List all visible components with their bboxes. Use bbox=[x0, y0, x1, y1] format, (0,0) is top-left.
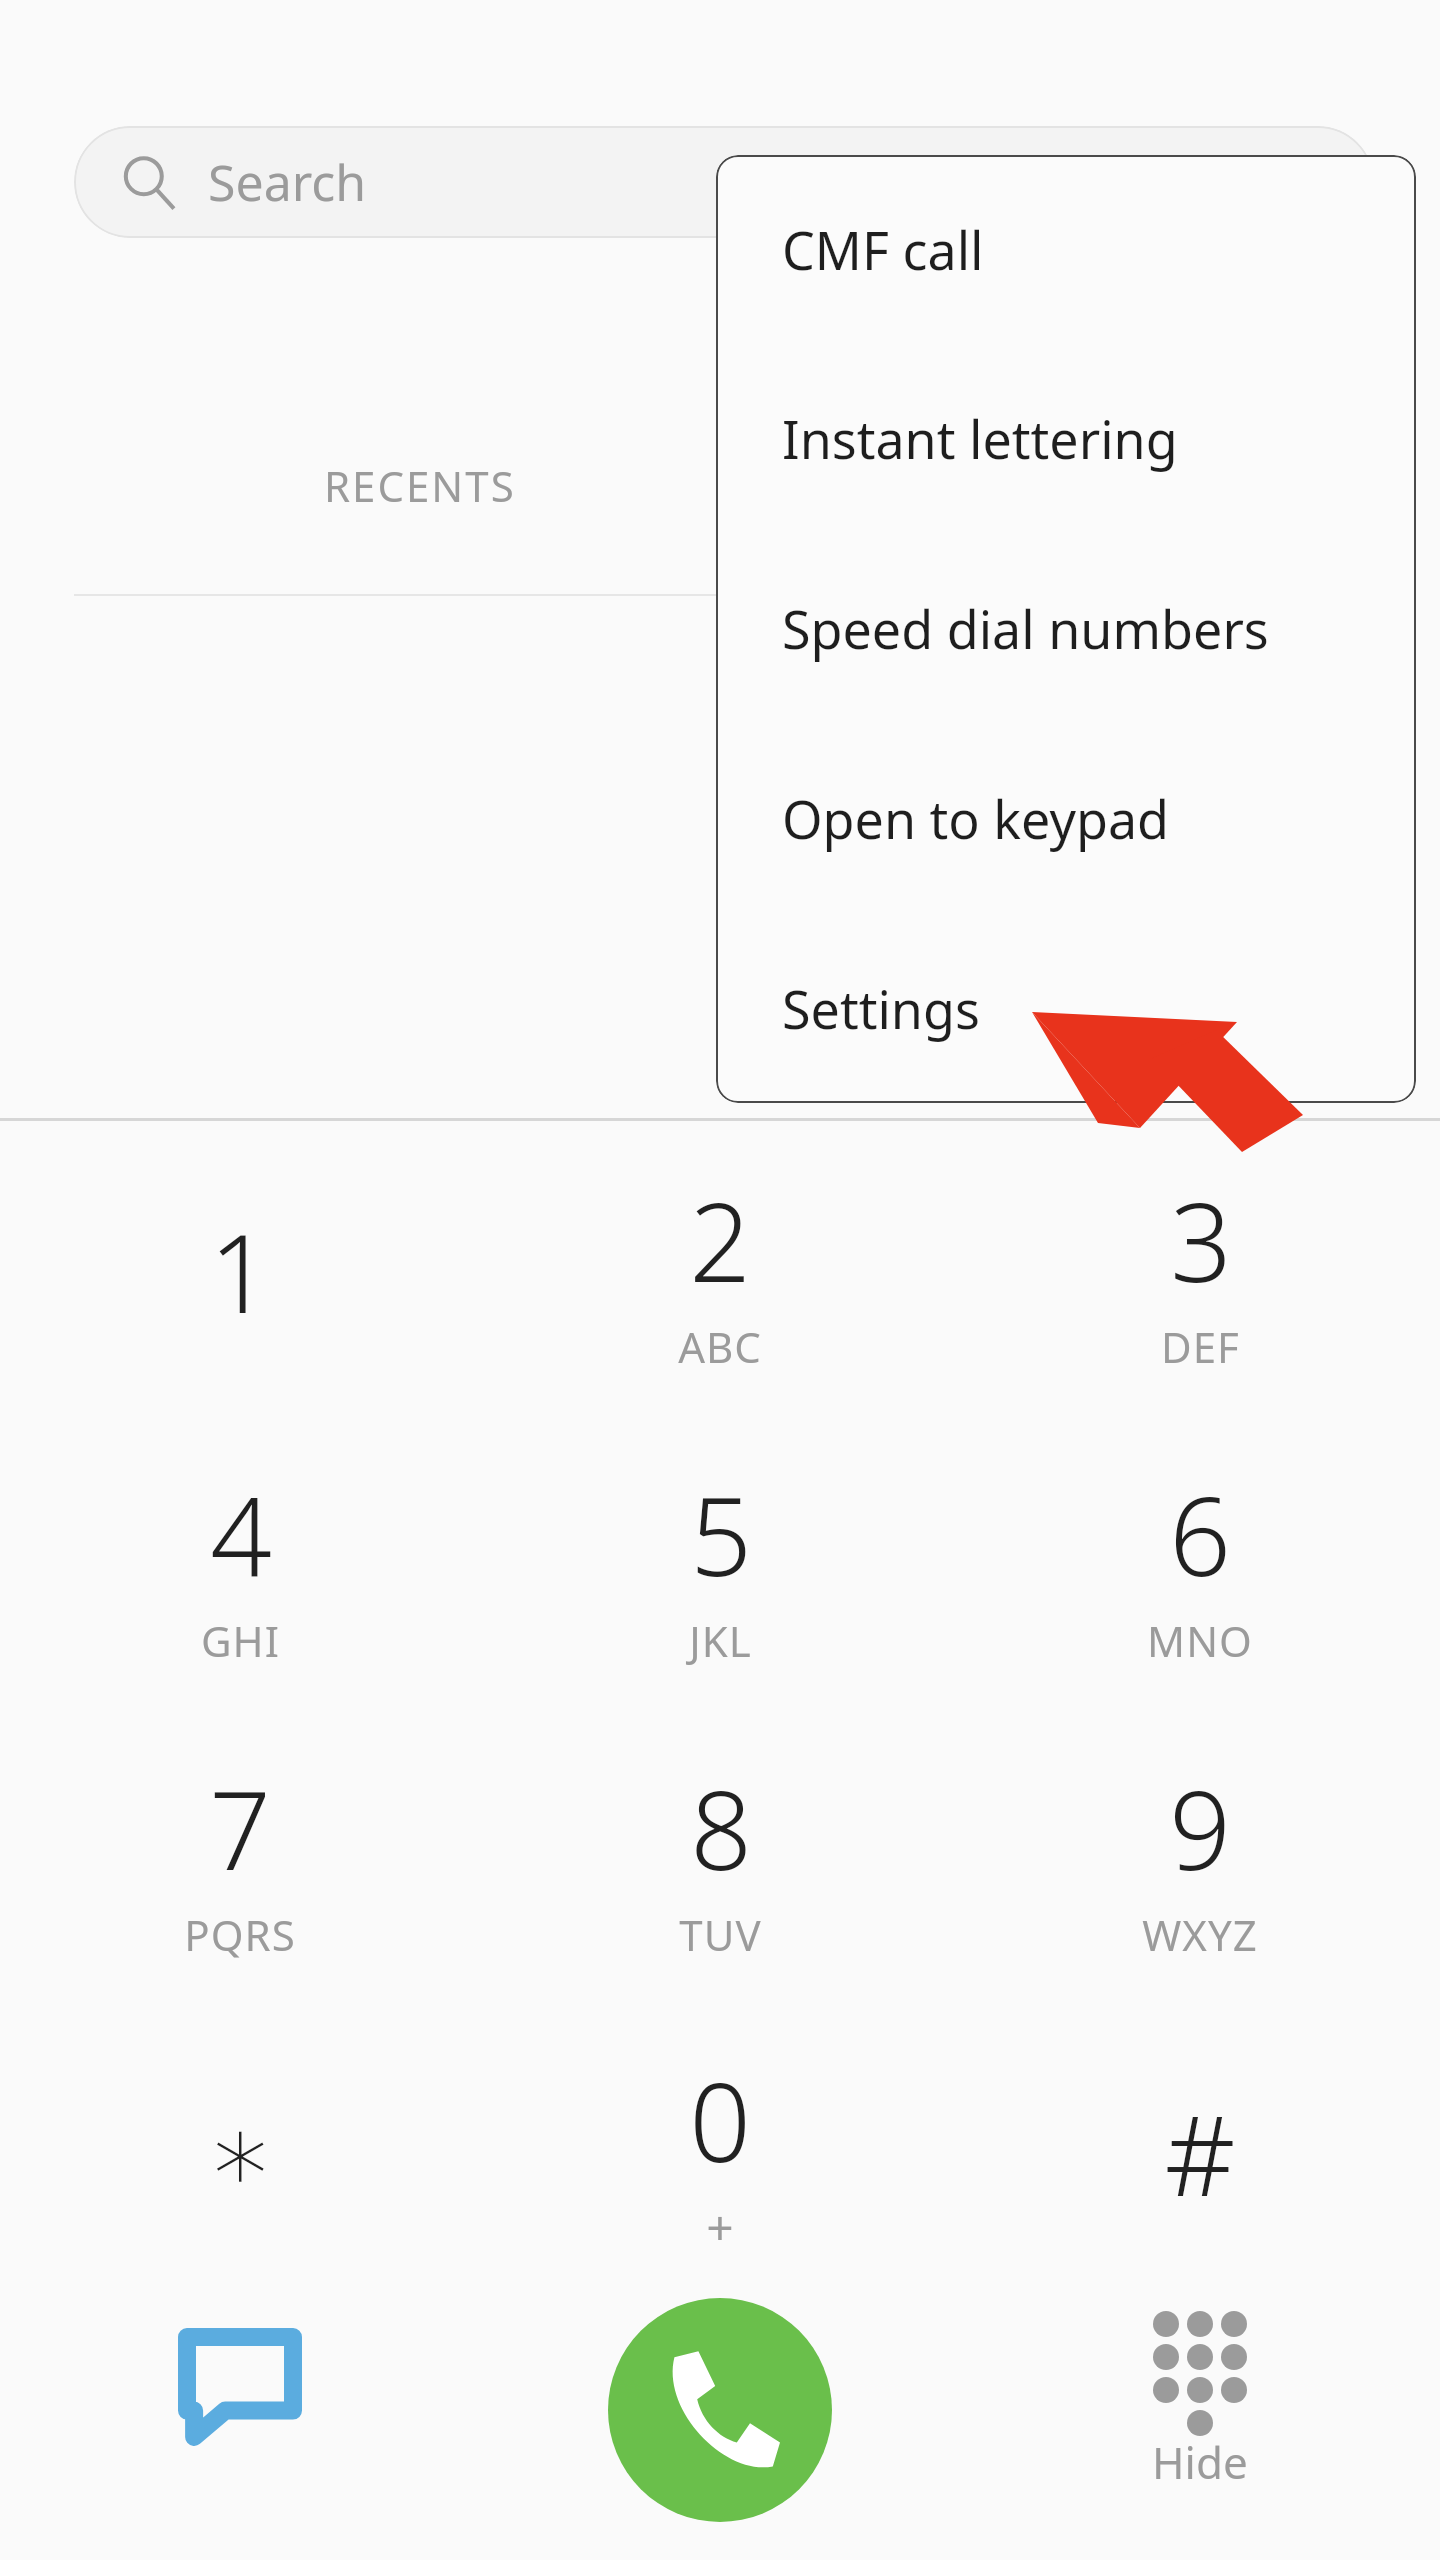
button[interactable]: 6 bbox=[960, 1418, 1440, 1712]
staticText: + bbox=[706, 2194, 735, 2259]
staticText: Hide bbox=[1152, 2432, 1248, 2492]
button[interactable]: Call bbox=[480, 2298, 960, 2560]
staticText: 6 bbox=[1169, 1461, 1231, 1608]
staticText: DEF bbox=[1161, 1318, 1240, 1375]
staticText: Search bbox=[208, 148, 367, 216]
button[interactable]: Instant lettering bbox=[716, 344, 1416, 533]
staticText: Open to keypad bbox=[782, 783, 1170, 854]
button[interactable]: Search bbox=[74, 126, 1374, 238]
staticText: 1 bbox=[209, 1198, 271, 1345]
staticText: Instant lettering bbox=[782, 403, 1178, 474]
staticText: GHI bbox=[201, 1612, 280, 1669]
button[interactable]: RECENTS bbox=[50, 410, 790, 560]
button[interactable]: CMF call bbox=[716, 155, 1416, 344]
staticText: PQRS bbox=[184, 1906, 296, 1963]
button[interactable]: Hide bbox=[960, 2298, 1440, 2560]
button[interactable]: Open to keypad bbox=[716, 723, 1416, 913]
button[interactable]: 4 bbox=[0, 1418, 480, 1712]
button[interactable]: Settings bbox=[716, 913, 1416, 1103]
staticText: CMF call bbox=[782, 214, 984, 285]
staticText: 8 bbox=[690, 1755, 752, 1902]
button[interactable]: 9 bbox=[960, 1712, 1440, 2006]
staticText: ABC bbox=[678, 1318, 762, 1375]
staticText: JKL bbox=[689, 1612, 752, 1669]
staticText: # bbox=[1164, 2078, 1236, 2228]
staticText: 7 bbox=[209, 1755, 271, 1902]
button[interactable]: ∗ bbox=[0, 2006, 480, 2300]
staticText: 3 bbox=[1170, 1167, 1232, 1314]
button[interactable]: 8 bbox=[480, 1712, 960, 2006]
button[interactable]: 7 bbox=[0, 1712, 480, 2006]
staticText: 2 bbox=[689, 1167, 751, 1314]
staticText: 9 bbox=[1169, 1755, 1231, 1902]
button[interactable]: # bbox=[960, 2006, 1440, 2300]
staticText: ∗ bbox=[206, 2089, 275, 2217]
button[interactable]: 2 bbox=[480, 1124, 960, 1418]
button[interactable]: Speed dial numbers bbox=[716, 533, 1416, 723]
staticText: TUV bbox=[679, 1906, 762, 1963]
staticText: WXYZ bbox=[1142, 1906, 1258, 1963]
staticText: Speed dial numbers bbox=[782, 593, 1269, 664]
button[interactable]: 1 bbox=[0, 1124, 480, 1418]
staticText: 4 bbox=[210, 1461, 272, 1608]
staticText: RECENTS bbox=[324, 457, 516, 514]
staticText: 0 bbox=[689, 2047, 751, 2194]
button[interactable]: 0 bbox=[480, 2006, 960, 2300]
button[interactable]: 5 bbox=[480, 1418, 960, 1712]
staticText: 5 bbox=[690, 1461, 752, 1608]
button[interactable]: Send message bbox=[0, 2298, 480, 2560]
button[interactable]: 3 bbox=[960, 1124, 1440, 1418]
staticText: Settings bbox=[782, 973, 980, 1044]
staticText: MNO bbox=[1147, 1612, 1253, 1669]
